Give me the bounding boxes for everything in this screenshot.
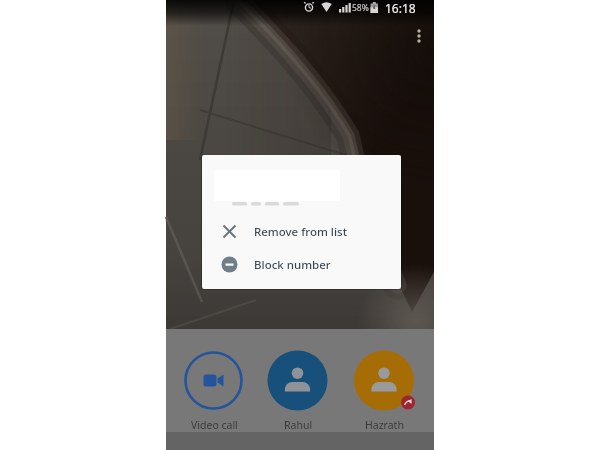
button[interactable] bbox=[411, 23, 427, 49]
staticText: Hazrath bbox=[365, 418, 404, 432]
button[interactable]: Block number bbox=[202, 249, 401, 280]
button[interactable]: Remove from list bbox=[202, 216, 401, 247]
staticText: Video call bbox=[191, 418, 238, 432]
staticText: Rahul bbox=[284, 418, 313, 432]
staticText: 58% bbox=[352, 2, 369, 14]
staticText: Remove from list bbox=[254, 224, 348, 240]
staticText: Block number bbox=[254, 257, 331, 273]
button[interactable] bbox=[353, 350, 415, 411]
button[interactable] bbox=[183, 350, 244, 411]
button[interactable] bbox=[267, 350, 328, 411]
staticText: 16:18 bbox=[385, 0, 416, 16]
